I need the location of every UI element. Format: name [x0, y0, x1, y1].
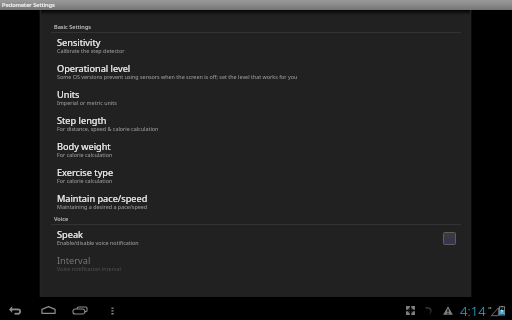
- staticText: Enable/disable voice notification: [57, 239, 139, 246]
- button[interactable]: Speak checkbox: [444, 233, 455, 244]
- button[interactable]: Fullscreen: [406, 306, 415, 315]
- button[interactable]: Rotation lock: [424, 305, 434, 316]
- button[interactable]: Speak: [41, 228, 471, 254]
- button[interactable]: Home: [41, 306, 56, 314]
- button[interactable]: Maintain pace/speed: [41, 192, 471, 218]
- staticText: Interval: [57, 254, 91, 267]
- staticText: Units: [57, 88, 80, 101]
- staticText: Speak: [57, 228, 83, 241]
- staticText: Maintaining a desired a pace/speed: [57, 203, 148, 210]
- button[interactable]: Battery: [499, 306, 505, 315]
- staticText: Body weight: [57, 140, 111, 153]
- staticText: Imperial or metric units: [57, 99, 117, 106]
- button[interactable]: Mobile signal: [488, 306, 499, 316]
- staticText: Exercise type: [57, 166, 114, 179]
- staticText: For distance, speed & calorie calculatio…: [57, 125, 159, 132]
- button[interactable]: Exercise type: [41, 166, 471, 192]
- staticText: 4:14: [460, 302, 486, 320]
- staticText: Maintain pace/speed: [57, 192, 148, 205]
- staticText: Basic Settings: [54, 23, 92, 31]
- button[interactable]: Step length: [41, 114, 471, 140]
- staticText: For calorie calculation: [57, 177, 113, 184]
- staticText: For calorie calculation: [57, 151, 113, 158]
- button[interactable]: Units: [41, 88, 471, 114]
- button[interactable]: Body weight: [41, 140, 471, 166]
- button[interactable]: Interval: [41, 254, 471, 280]
- staticText: Some OS versions prevent using sensors w…: [57, 73, 298, 80]
- button[interactable]: Recents: [73, 307, 87, 314]
- staticText: Voice notification interval: [57, 265, 122, 272]
- button[interactable]: Back: [9, 306, 21, 315]
- button[interactable]: Operational level: [41, 62, 471, 88]
- staticText: Step length: [57, 114, 107, 127]
- staticText: Pedometer Settings: [2, 1, 55, 9]
- staticText: Sensitivity: [57, 36, 101, 49]
- button[interactable]: Menu: [111, 307, 114, 314]
- staticText: Voice: [54, 215, 69, 223]
- staticText: Calibrate the step detector: [57, 47, 125, 54]
- button[interactable]: Sensitivity: [41, 36, 471, 62]
- button[interactable]: Alert: [443, 306, 453, 315]
- staticText: Operational level: [57, 62, 131, 75]
